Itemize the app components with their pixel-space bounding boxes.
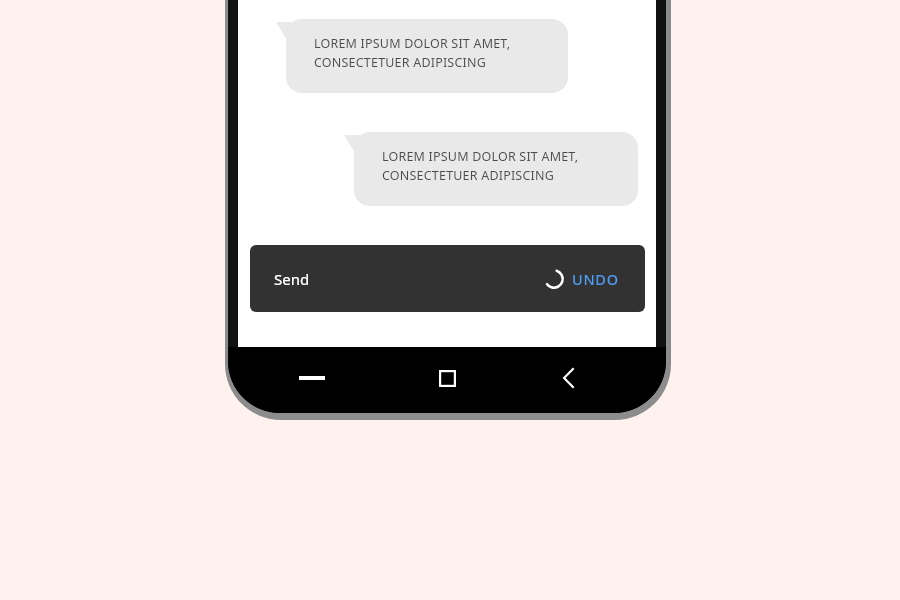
staticText: LOREM IPSUM DOLOR SIT AMET, CONSECTETUER… bbox=[382, 148, 579, 184]
staticText: UNDO bbox=[572, 269, 619, 289]
button[interactable]: UNDO bbox=[572, 269, 619, 289]
button[interactable]: Recents bbox=[288, 358, 336, 398]
button[interactable]: Back bbox=[544, 356, 592, 400]
staticText: LOREM IPSUM DOLOR SIT AMET, CONSECTETUER… bbox=[314, 35, 511, 71]
staticText: Send bbox=[274, 269, 310, 289]
button[interactable]: Send bbox=[250, 245, 645, 312]
button[interactable]: LOREM IPSUM DOLOR SIT AMET, CONSECTETUER… bbox=[344, 132, 628, 206]
button[interactable]: Home bbox=[423, 356, 471, 400]
button[interactable]: LOREM IPSUM DOLOR SIT AMET, CONSECTETUER… bbox=[276, 19, 558, 93]
